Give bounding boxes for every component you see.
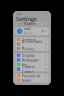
- button[interactable]: Notes: [15, 78, 49, 83]
- staticText: Display: [22, 53, 35, 58]
- staticText: General: [22, 37, 36, 42]
- button[interactable]: Siri: [15, 62, 49, 67]
- staticText: Appleseed: [24, 20, 37, 31]
- button[interactable]: Passwords: [15, 73, 49, 78]
- button[interactable]: General: [15, 37, 49, 42]
- staticText: •••: [45, 12, 48, 15]
- staticText: Accessibility: [22, 39, 43, 49]
- staticText: Wallpaper: [22, 57, 40, 62]
- staticText: Settings: [16, 15, 37, 23]
- button[interactable]: Control Centre: [15, 67, 49, 71]
- button[interactable]: Privacy: [15, 46, 49, 51]
- staticText: 9:41: [16, 12, 23, 15]
- button[interactable]: Wallpaper: [15, 58, 49, 62]
- staticText: Notes: [22, 78, 32, 83]
- staticText: Siri: [22, 62, 28, 67]
- staticText: Privacy: [22, 46, 35, 51]
- button[interactable]: Accessibility: [15, 42, 49, 46]
- staticText: Apple Account, iCloud: [24, 31, 36, 42]
- staticText: Passwords: [22, 73, 41, 78]
- button[interactable]: Appleseed: [13, 27, 51, 35]
- staticText: Control Centre: [22, 64, 35, 74]
- button[interactable]: Display: [15, 53, 49, 58]
- staticText: Search: [17, 22, 25, 25]
